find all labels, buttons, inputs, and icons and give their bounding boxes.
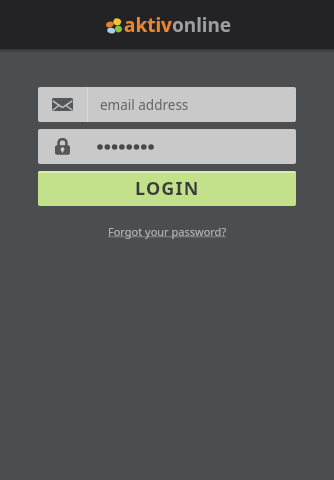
button[interactable]: Forgot your password? xyxy=(108,224,227,239)
button[interactable] xyxy=(38,129,296,164)
staticText: LOGIN xyxy=(135,176,200,201)
staticText: Forgot your password? xyxy=(108,224,227,239)
staticText: email address xyxy=(100,96,189,114)
staticText: aktivonline xyxy=(124,12,232,38)
button[interactable]: email address xyxy=(38,87,296,122)
button[interactable]: LOGIN xyxy=(38,171,296,206)
